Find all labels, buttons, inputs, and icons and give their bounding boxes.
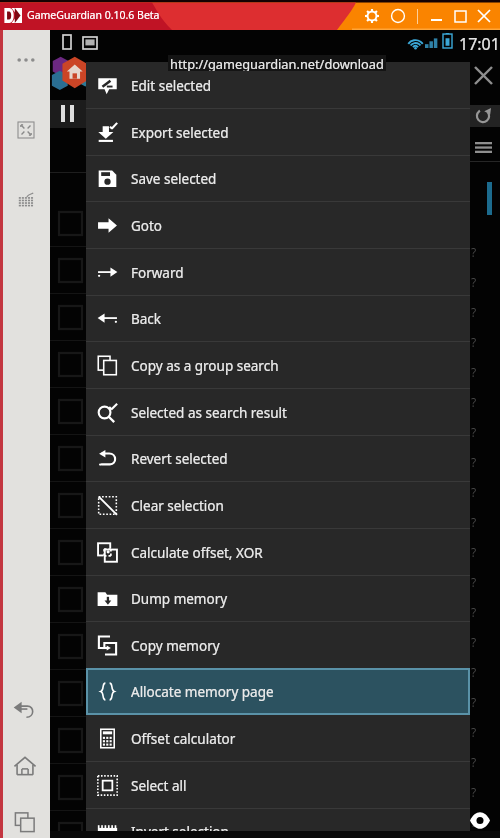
- button[interactable]: Offset calculator: [86, 715, 470, 762]
- button[interactable]: Home: [11, 752, 39, 780]
- button[interactable]: Invert selection: [86, 808, 470, 838]
- staticText: ?: [471, 724, 477, 740]
- button[interactable]: Show: [468, 808, 492, 832]
- staticText: ?: [471, 694, 477, 710]
- staticText: Allocate memory page: [131, 683, 274, 701]
- button[interactable]: Export selected: [86, 109, 470, 156]
- staticText: ?: [471, 814, 477, 830]
- button[interactable]: Clear selection: [86, 482, 470, 529]
- button[interactable]: Dump memory: [86, 575, 470, 622]
- button[interactable]: Calculate offset, XOR: [86, 529, 470, 576]
- button[interactable]: Edit selected: [86, 62, 470, 109]
- staticText: Selected as search result: [131, 404, 287, 422]
- button[interactable]: Revert selected: [86, 435, 470, 482]
- staticText: ?: [471, 754, 477, 770]
- staticText: Dump memory: [131, 590, 228, 608]
- button[interactable]: More options: [13, 47, 39, 73]
- button[interactable]: Close: [472, 4, 496, 28]
- staticText: ?: [471, 304, 477, 320]
- button[interactable]: Minimize: [424, 4, 448, 28]
- button[interactable]: Fullscreen: [13, 117, 39, 143]
- staticText: ?: [471, 274, 477, 290]
- staticText: ?: [471, 544, 477, 560]
- staticText: ?: [471, 514, 477, 530]
- button[interactable]: Save selected: [86, 155, 470, 202]
- staticText: Revert selected: [131, 450, 228, 468]
- staticText: Forward: [131, 264, 184, 282]
- staticText: GameGuardian 0.10.6 Beta: [27, 8, 160, 22]
- button[interactable]: Close tab: [470, 62, 496, 88]
- button[interactable]: Copy memory: [86, 622, 470, 669]
- staticText: Offset calculator: [131, 730, 236, 748]
- staticText: Export selected: [131, 124, 229, 142]
- staticText: ?: [471, 334, 477, 350]
- staticText: ?: [471, 394, 477, 410]
- button[interactable]: Select all: [86, 762, 470, 809]
- staticText: Edit selected: [131, 77, 212, 95]
- staticText: ?: [471, 244, 477, 260]
- button[interactable]: Back: [86, 295, 470, 342]
- button[interactable]: Help: [386, 4, 410, 28]
- button[interactable]: Forward: [86, 249, 470, 296]
- staticText: |0n,00,00,00J=0p+0: [170, 815, 271, 830]
- staticText: ?: [471, 484, 477, 500]
- staticText: Copy as a group search: [131, 357, 279, 375]
- button[interactable]: Back: [11, 696, 39, 724]
- staticText: Copy memory: [131, 637, 220, 655]
- staticText: ?: [471, 454, 477, 470]
- button[interactable]: Keyboard mapping: [13, 187, 39, 213]
- staticText: Goto: [131, 217, 163, 235]
- button[interactable]: Maximize: [448, 4, 472, 28]
- staticText: Back: [131, 310, 162, 328]
- button[interactable]: Settings: [360, 4, 384, 28]
- staticText: ?: [471, 364, 477, 380]
- staticText: http://gameguardian.net/download: [170, 55, 384, 71]
- staticText: ?: [471, 424, 477, 440]
- staticText: ?: [471, 574, 477, 590]
- button[interactable]: Selected as search result: [86, 389, 470, 436]
- staticText: 17:01: [459, 33, 500, 55]
- staticText: ?: [471, 664, 477, 680]
- staticText: ?: [471, 784, 477, 800]
- button[interactable]: Goto: [86, 202, 470, 249]
- staticText: ?: [471, 604, 477, 620]
- staticText: Clear selection: [131, 497, 224, 515]
- button[interactable]: Allocate memory page: [86, 668, 470, 715]
- button[interactable]: Recent apps: [11, 808, 39, 836]
- button[interactable]: Menu: [472, 138, 494, 156]
- staticText: Save selected: [131, 170, 217, 188]
- button[interactable]: Copy as a group search: [86, 342, 470, 389]
- staticText: Calculate offset, XOR: [131, 544, 263, 562]
- staticText: Invert selection: [131, 823, 229, 838]
- button[interactable]: Reload: [465, 105, 500, 127]
- staticText: ?: [471, 634, 477, 650]
- staticText: Select all: [131, 777, 187, 795]
